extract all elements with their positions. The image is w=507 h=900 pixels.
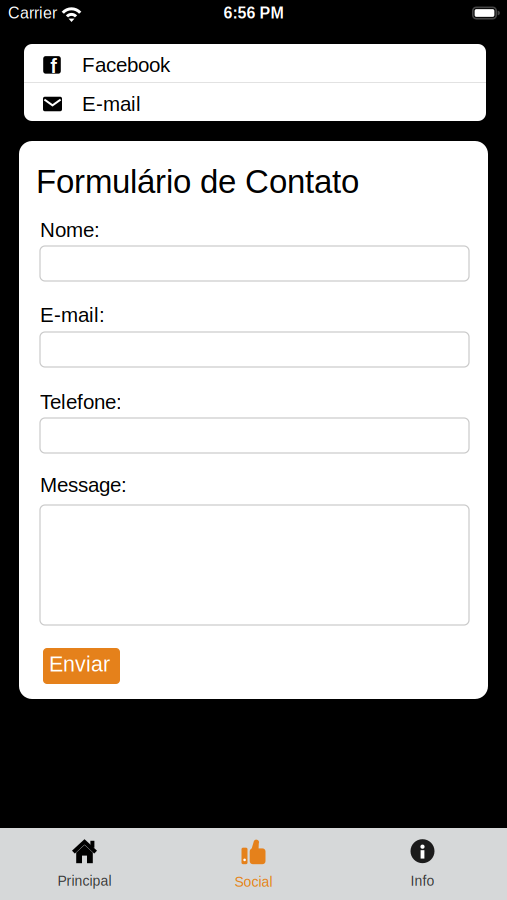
button[interactable]: E-mail (24, 83, 486, 121)
staticText: E-mail (82, 92, 141, 115)
staticText: Info (410, 873, 434, 889)
button[interactable]: f (24, 44, 486, 82)
button[interactable]: Social (169, 828, 338, 900)
staticText: Message: (40, 473, 127, 496)
button[interactable]: Enviar (43, 648, 120, 684)
button[interactable]: Principal (0, 828, 169, 900)
staticText: f (50, 55, 57, 77)
button[interactable]: Info (338, 828, 507, 900)
staticText: Facebook (82, 53, 170, 76)
staticText: E-mail: (40, 303, 105, 326)
staticText: Social (234, 874, 272, 890)
staticText: 6:56 PM (223, 4, 283, 22)
staticText: Principal (57, 873, 111, 889)
staticText: Telefone: (40, 390, 122, 413)
staticText: Carrier (8, 4, 57, 22)
staticText: Nome: (40, 218, 100, 241)
staticText: Enviar (49, 652, 110, 676)
staticText: Formulário de Contato (36, 163, 359, 200)
